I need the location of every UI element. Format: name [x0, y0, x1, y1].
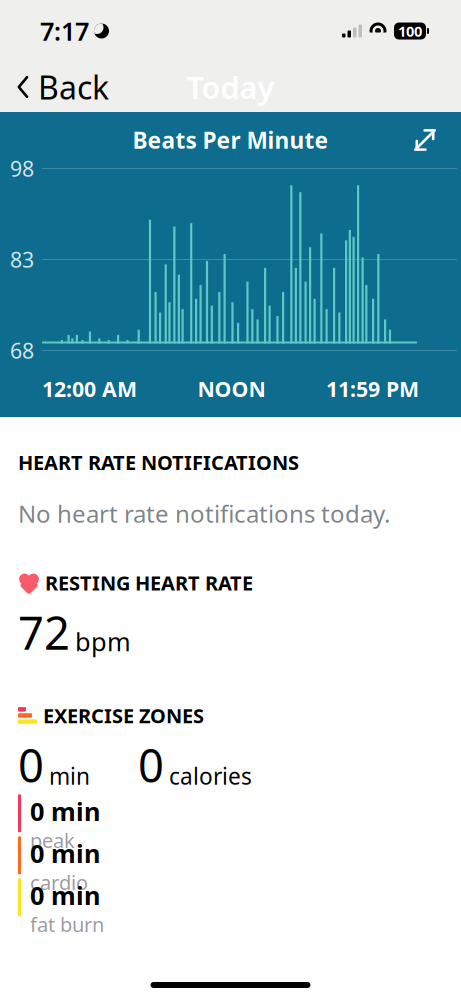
- staticText: 72: [18, 602, 70, 662]
- staticText: 0: [18, 735, 44, 795]
- staticText: 0 min: [30, 794, 100, 828]
- staticText: Beats Per Minute: [132, 125, 328, 155]
- staticText: NOON: [197, 375, 265, 403]
- staticText: Back: [38, 66, 109, 108]
- staticText: cardio: [30, 869, 88, 896]
- staticText: peak: [30, 827, 75, 854]
- staticText: 98: [10, 154, 34, 183]
- button[interactable]: Back: [4, 58, 121, 116]
- staticText: No heart rate notifications today.: [18, 498, 390, 529]
- staticText: min: [49, 761, 90, 791]
- staticText: 7:17: [40, 14, 89, 48]
- staticText: 0 min: [30, 836, 100, 870]
- staticText: 11:59 PM: [326, 375, 419, 403]
- staticText: HEART RATE NOTIFICATIONS: [18, 449, 299, 476]
- staticText: 0: [138, 735, 164, 795]
- staticText: 12:00 AM: [42, 375, 137, 403]
- staticText: Today: [186, 67, 274, 107]
- button[interactable]: Expand chart: [405, 120, 445, 160]
- staticText: 0 min: [30, 878, 100, 912]
- staticText: RESTING HEART RATE: [45, 569, 253, 596]
- staticText: 68: [10, 336, 34, 365]
- staticText: 100: [398, 21, 422, 41]
- staticText: EXERCISE ZONES: [43, 702, 204, 729]
- staticText: 83: [10, 245, 34, 274]
- staticText: fat burn: [30, 911, 104, 938]
- staticText: calories: [169, 761, 252, 791]
- staticText: bpm: [75, 624, 131, 658]
